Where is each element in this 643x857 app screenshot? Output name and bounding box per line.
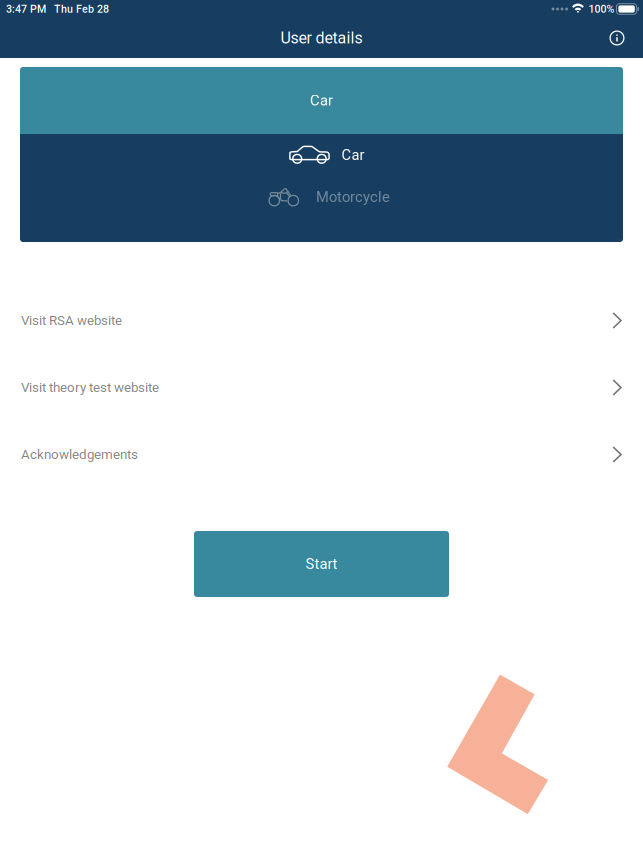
staticText: Visit theory test website (21, 380, 159, 395)
staticText: 3:47 PM (6, 3, 46, 15)
button[interactable]: Car (20, 67, 623, 134)
button[interactable]: Car (20, 134, 623, 176)
staticText: Car (310, 92, 333, 109)
button[interactable]: Visit theory test website (21, 354, 622, 421)
staticText: Motorcycle (316, 188, 390, 206)
staticText: 100% (588, 3, 614, 15)
staticText: User details (280, 29, 362, 47)
button[interactable]: Motorcycle (20, 176, 623, 218)
staticText: Acknowledgements (21, 447, 138, 462)
staticText: Thu Feb 28 (54, 3, 109, 15)
staticText: Car (341, 146, 364, 164)
button[interactable]: Information (599, 20, 635, 56)
staticText: Visit RSA website (21, 313, 122, 328)
button[interactable]: Visit RSA website (21, 287, 622, 354)
button[interactable]: Acknowledgements (21, 421, 622, 488)
staticText: Start (305, 555, 337, 573)
button[interactable]: Start (194, 531, 449, 597)
